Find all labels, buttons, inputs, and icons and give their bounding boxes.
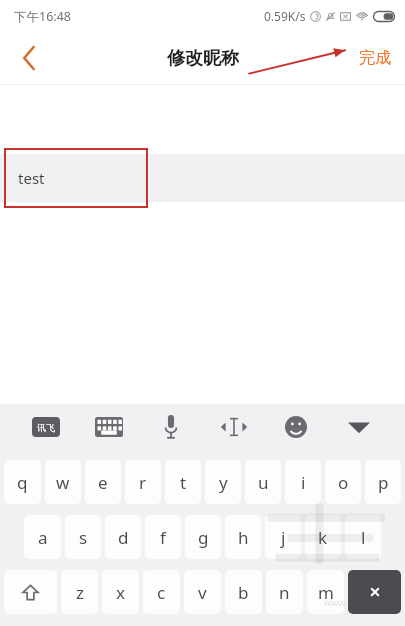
staticText: e xyxy=(98,471,108,494)
staticText: l xyxy=(361,526,366,549)
staticText: 0.59K/s xyxy=(264,8,306,24)
button[interactable]: n xyxy=(266,570,303,614)
staticText: z xyxy=(76,581,84,604)
staticText: test xyxy=(18,168,45,188)
staticText: c xyxy=(157,581,166,604)
button[interactable]: k xyxy=(305,515,341,559)
button[interactable]: a xyxy=(24,515,61,559)
button[interactable]: Voice input xyxy=(149,405,193,449)
staticText: g xyxy=(198,526,209,549)
staticText: www.pc6.com xyxy=(324,596,383,608)
button[interactable]: i xyxy=(285,460,321,504)
button[interactable]: Hide keyboard xyxy=(337,405,381,449)
staticText: 修改昵称 xyxy=(167,47,239,70)
button[interactable]: f xyxy=(145,515,181,559)
staticText: x xyxy=(116,581,125,604)
staticText: o xyxy=(338,471,349,494)
button[interactable]: u xyxy=(245,460,281,504)
button[interactable]: Back xyxy=(0,32,58,84)
button[interactable]: x xyxy=(102,570,139,614)
staticText: i xyxy=(301,471,306,494)
button[interactable]: Input method xyxy=(24,405,68,449)
button[interactable]: Move cursor xyxy=(212,405,256,449)
staticText: s xyxy=(79,526,88,549)
button[interactable]: Backspace xyxy=(348,570,401,614)
button[interactable]: t xyxy=(165,460,201,504)
button[interactable]: s xyxy=(65,515,101,559)
button[interactable]: d xyxy=(105,515,141,559)
button[interactable]: q xyxy=(4,460,41,504)
staticText: p xyxy=(378,471,389,494)
staticText: m xyxy=(318,581,334,604)
staticText: b xyxy=(238,581,249,604)
staticText: h xyxy=(238,526,249,549)
staticText: y xyxy=(219,471,228,494)
staticText: k xyxy=(318,526,328,549)
button[interactable]: r xyxy=(125,460,161,504)
staticText: n xyxy=(279,581,290,604)
button[interactable]: v xyxy=(184,570,221,614)
staticText: 讯飞 xyxy=(37,422,55,433)
button[interactable]: y xyxy=(205,460,241,504)
staticText: 下午16:48 xyxy=(14,8,71,25)
button[interactable]: z xyxy=(61,570,98,614)
staticText: w xyxy=(56,471,70,494)
button[interactable]: Keyboard layout xyxy=(87,405,131,449)
staticText: a xyxy=(38,526,48,549)
button[interactable]: l xyxy=(345,515,381,559)
staticText: d xyxy=(118,526,129,549)
staticText: j xyxy=(281,526,286,549)
staticText: r xyxy=(139,471,147,494)
button[interactable]: 完成 xyxy=(345,32,405,84)
staticText: q xyxy=(17,471,28,494)
staticText: t xyxy=(180,471,187,494)
button[interactable]: j xyxy=(265,515,301,559)
button[interactable]: c xyxy=(143,570,180,614)
staticText: u xyxy=(258,471,269,494)
button[interactable]: o xyxy=(325,460,361,504)
staticText: 完成 xyxy=(359,48,391,68)
button[interactable]: w xyxy=(45,460,81,504)
button[interactable]: e xyxy=(85,460,121,504)
button[interactable]: p xyxy=(365,460,401,504)
button[interactable]: Shift xyxy=(4,570,57,614)
button[interactable]: h xyxy=(225,515,261,559)
staticText: f xyxy=(160,526,166,549)
button[interactable]: Emoji xyxy=(274,405,318,449)
staticText: v xyxy=(198,581,207,604)
button[interactable]: b xyxy=(225,570,262,614)
button[interactable]: test xyxy=(0,154,405,202)
button[interactable]: m xyxy=(307,570,344,614)
button[interactable]: g xyxy=(185,515,221,559)
